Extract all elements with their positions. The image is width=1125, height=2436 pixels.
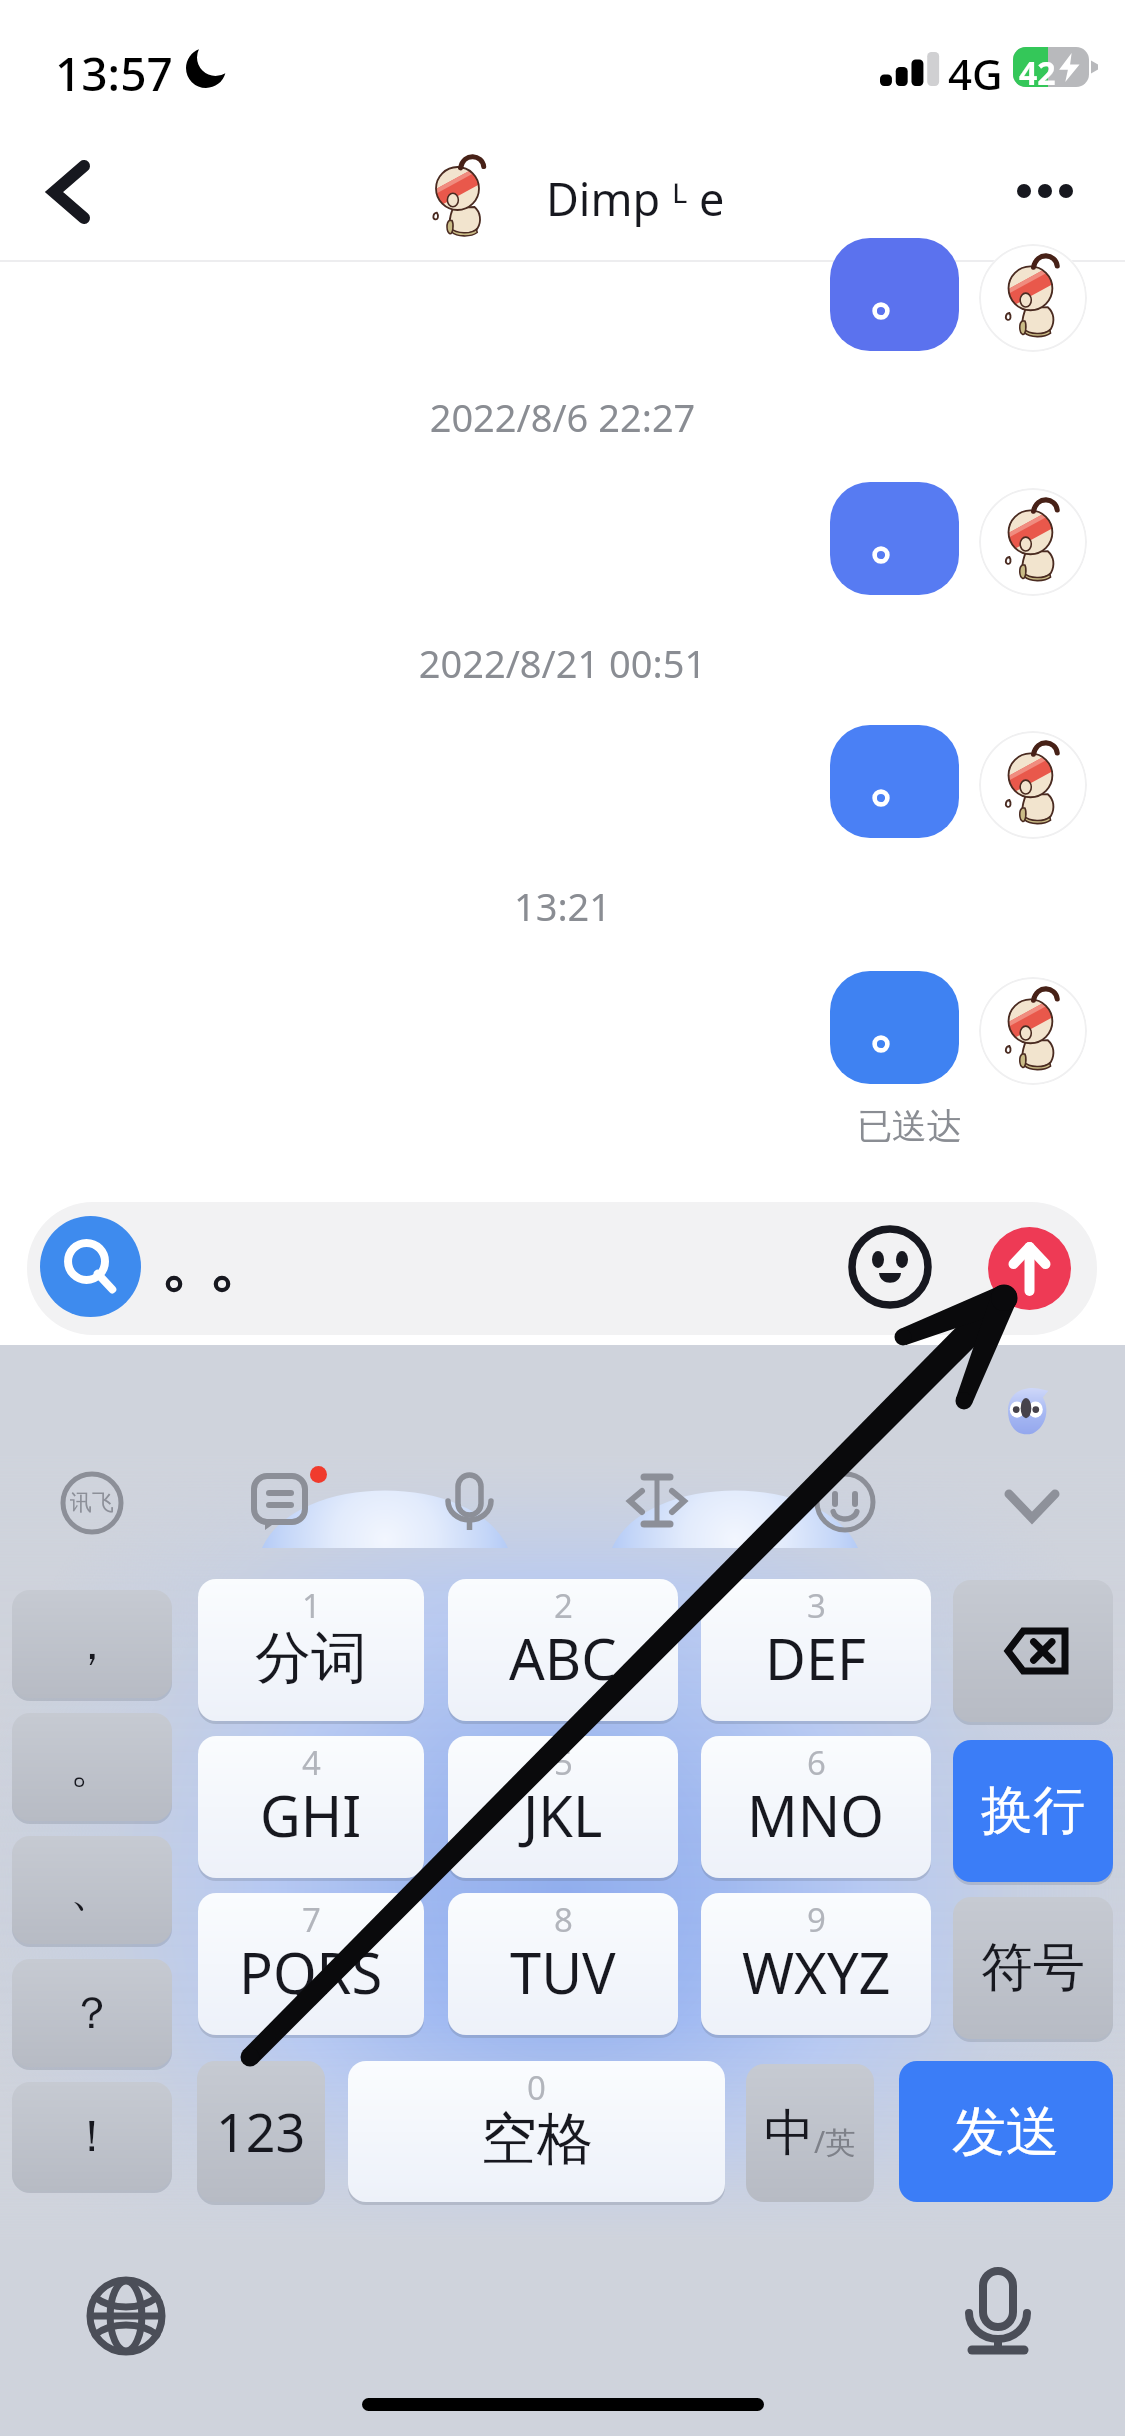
button[interactable]: Send [988, 1227, 1071, 1310]
button[interactable]: ？ [12, 1959, 172, 2067]
button[interactable]: More options [990, 136, 1100, 246]
staticText: ， [70, 1617, 114, 1672]
staticText: 。 [70, 1740, 114, 1795]
staticText: 8 [554, 1897, 573, 1942]
button[interactable]: 中 [746, 2064, 874, 2202]
button[interactable] [830, 971, 959, 1084]
button[interactable] [979, 977, 1087, 1085]
staticText: 9 [807, 1897, 826, 1942]
button[interactable]: 6 [701, 1736, 931, 1878]
button[interactable]: 2 [448, 1579, 678, 1721]
staticText: 2022/8/21 00:51 [0, 637, 1125, 689]
staticText: WXYZ [742, 1934, 891, 2010]
button[interactable]: 发送 [899, 2061, 1113, 2202]
staticText: DEF [765, 1620, 867, 1696]
button[interactable] [830, 238, 959, 351]
button[interactable]: 5 [448, 1736, 678, 1878]
staticText: TUV [510, 1934, 616, 2010]
staticText: 123 [216, 2096, 306, 2167]
button[interactable]: 9 [701, 1893, 931, 2035]
staticText: GHI [260, 1777, 362, 1853]
staticText: 、 [70, 1863, 114, 1918]
button[interactable] [830, 725, 959, 838]
staticText: 6 [807, 1740, 826, 1785]
staticText: 4 [302, 1740, 321, 1785]
staticText: /英 [814, 2121, 856, 2162]
button[interactable]: 换行 [953, 1740, 1113, 1882]
staticText: 3 [807, 1583, 826, 1628]
button[interactable] [979, 244, 1087, 352]
button[interactable]: 8 [448, 1893, 678, 2035]
staticText: 13:21 [0, 880, 1125, 932]
button[interactable]: Emoji keyboard [813, 1470, 877, 1534]
button[interactable]: Switch language [80, 2270, 172, 2362]
staticText: 发送 [952, 2098, 1060, 2166]
button[interactable] [979, 731, 1087, 839]
button[interactable]: 4 [198, 1736, 424, 1878]
button[interactable]: 符号 [953, 1897, 1113, 2039]
staticText: ？ [70, 1986, 114, 2041]
staticText: MNO [747, 1777, 885, 1853]
staticText: 换行 [981, 1778, 1085, 1844]
button[interactable]: Hide keyboard [1000, 1479, 1064, 1527]
button[interactable]: Back [16, 136, 126, 246]
staticText: ！ [70, 2109, 114, 2164]
button[interactable]: ， [12, 1590, 172, 1698]
staticText: 符号 [981, 1935, 1085, 2001]
staticText: 已送达 [857, 1104, 962, 1148]
staticText: Dimp ᴸ e [546, 168, 725, 229]
button[interactable]: Search [40, 1216, 141, 1317]
button[interactable]: 、 [12, 1836, 172, 1944]
staticText: 4G [948, 45, 1003, 102]
staticText: 中 [764, 2102, 814, 2165]
button[interactable]: 7 [198, 1893, 424, 2035]
staticText: 1 [302, 1583, 321, 1628]
staticText: JKL [523, 1777, 603, 1853]
staticText: 0 [527, 2065, 546, 2110]
button[interactable]: 3 [701, 1579, 931, 1721]
staticText: 空格 [481, 2104, 593, 2175]
button[interactable]: 1 [198, 1579, 424, 1721]
staticText: ABC [509, 1620, 617, 1696]
button[interactable] [953, 1580, 1113, 1722]
staticText: 42 [1019, 51, 1056, 95]
button[interactable] [979, 488, 1087, 596]
staticText: 2 [554, 1583, 573, 1628]
staticText: 7 [302, 1897, 321, 1942]
staticText: 2022/8/6 22:27 [0, 391, 1125, 443]
staticText: PQRS [239, 1934, 383, 2010]
button[interactable]: 。 [12, 1713, 172, 1821]
button[interactable]: Emoji [845, 1221, 935, 1311]
button[interactable]: 0 [348, 2061, 725, 2202]
staticText: 13:57 [55, 42, 173, 105]
staticText: 5 [554, 1740, 573, 1785]
button[interactable]: Dictate [966, 2267, 1030, 2359]
button[interactable] [830, 482, 959, 595]
button[interactable]: Input method [58, 1469, 126, 1537]
staticText: 讯飞 [70, 1489, 114, 1517]
button[interactable]: 123 [197, 2061, 325, 2202]
button[interactable]: ！ [12, 2082, 172, 2190]
staticText: 分词 [255, 1623, 367, 1694]
